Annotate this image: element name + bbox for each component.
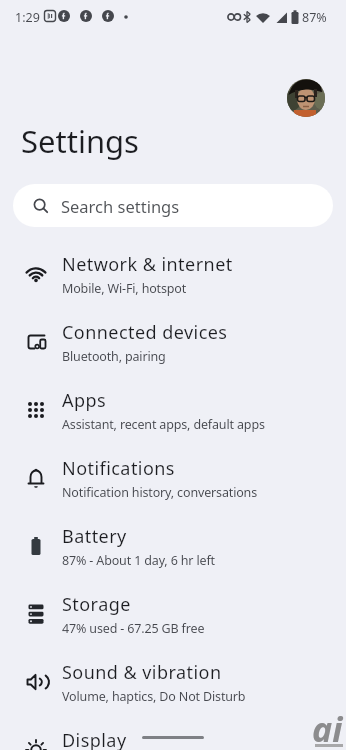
staticText: 47% used - 67.25 GB free [62, 620, 205, 637]
button[interactable]: Notifications [0, 444, 346, 512]
staticText: Network & internet [62, 252, 233, 277]
staticText: 1:29 [15, 9, 40, 26]
button[interactable]: Battery [0, 512, 346, 580]
staticText: Settings [21, 120, 139, 162]
staticText: Search settings [61, 195, 180, 217]
staticText: Volume, haptics, Do Not Disturb [62, 688, 246, 705]
staticText: Notification history, conversations [62, 484, 258, 501]
staticText: ai [312, 706, 343, 750]
button[interactable]: Display [0, 716, 346, 750]
staticText: Assistant, recent apps, default apps [62, 416, 265, 433]
button[interactable]: Apps [0, 376, 346, 444]
button[interactable]: Search settings [13, 184, 333, 227]
button[interactable]: Sound & vibration [0, 648, 346, 716]
staticText: Connected devices [62, 320, 228, 345]
button[interactable]: Connected devices [0, 308, 346, 376]
button[interactable]: Network & internet [0, 240, 346, 308]
staticText: Display [62, 728, 127, 750]
staticText: Mobile, Wi-Fi, hotspot [62, 280, 187, 297]
button[interactable]: Storage [0, 580, 346, 648]
staticText: Notifications [62, 456, 175, 481]
staticText: 87% [302, 9, 327, 26]
staticText: Bluetooth, pairing [62, 348, 166, 365]
staticText: Storage [62, 592, 131, 617]
staticText: 87% - About 1 day, 6 hr left [62, 552, 215, 569]
button[interactable] [287, 79, 325, 117]
staticText: Sound & vibration [62, 660, 222, 685]
staticText: Apps [62, 388, 107, 413]
staticText: Battery [62, 524, 127, 549]
